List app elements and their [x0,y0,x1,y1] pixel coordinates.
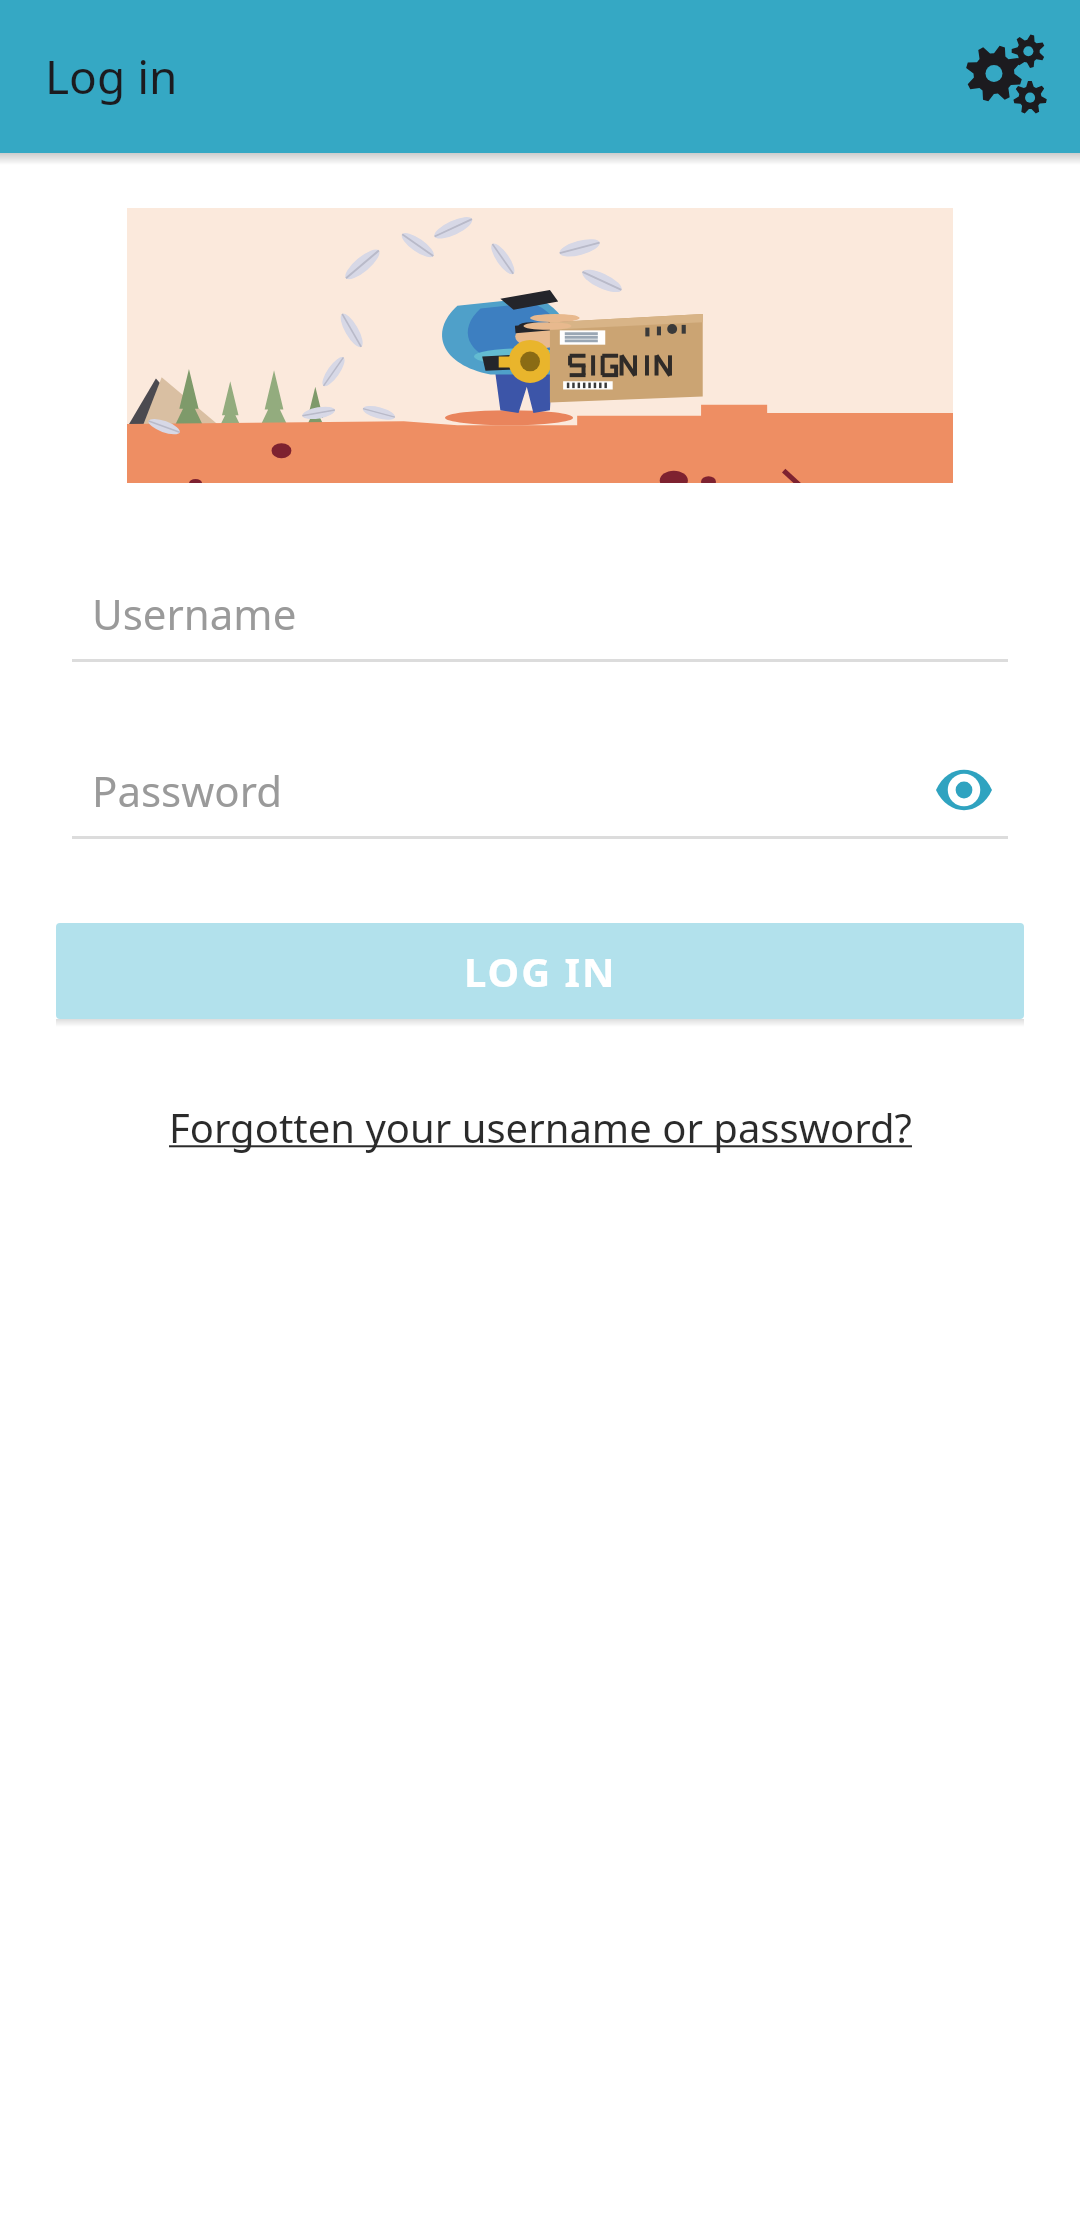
button[interactable]: Password [72,744,1008,839]
button[interactable]: LOG IN [56,923,1024,1019]
staticText: Password [92,762,282,819]
button[interactable]: Show password [920,746,1008,834]
staticText: Log in [45,45,178,108]
button[interactable]: Settings [954,25,1058,129]
button[interactable]: Username [72,567,1008,662]
staticText: Forgotten your username or password? [169,1100,912,1154]
staticText: LOG IN [464,944,617,998]
staticText: Username [92,585,297,642]
button[interactable]: Forgotten your username or password? [169,1100,912,1154]
